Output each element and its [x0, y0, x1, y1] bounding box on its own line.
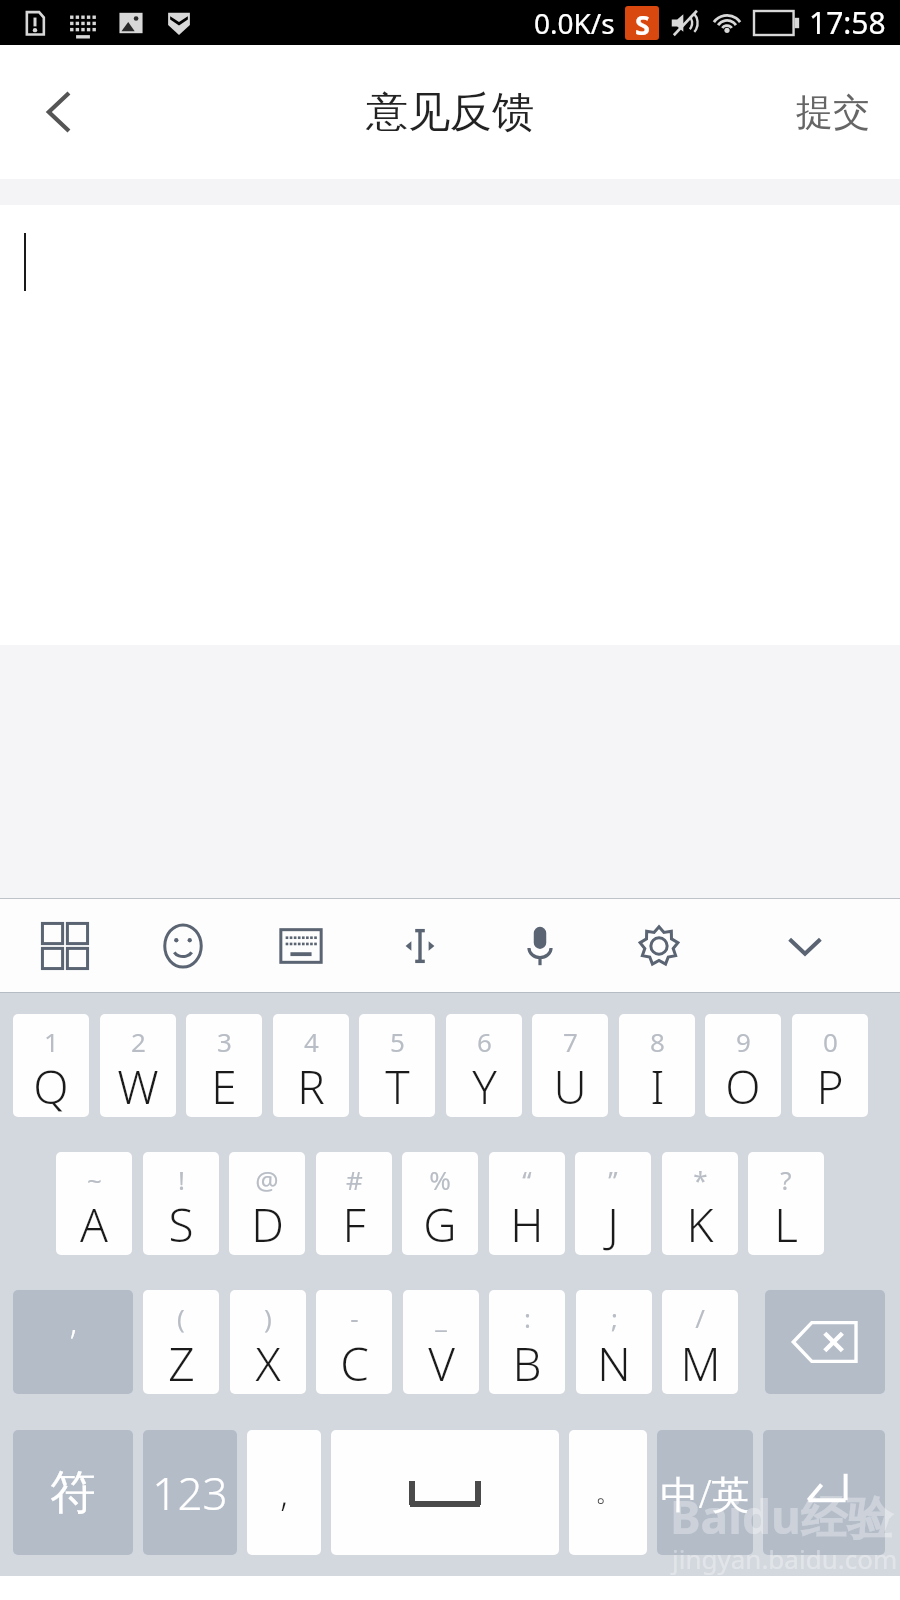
staticText: 符 [50, 1464, 96, 1522]
button[interactable]: 2 [100, 1014, 176, 1117]
staticText: B [512, 1332, 542, 1394]
button[interactable]: Voice input [507, 913, 573, 979]
staticText: @ [255, 1162, 279, 1197]
staticText: M [680, 1332, 721, 1394]
staticText: ) [264, 1300, 272, 1335]
button[interactable]: ) [230, 1290, 306, 1394]
staticText: 3 [217, 1024, 232, 1059]
button[interactable]: 。 [569, 1430, 647, 1555]
staticText: 意见反馈 [366, 86, 534, 139]
staticText: 5 [390, 1024, 405, 1059]
staticText: 123 [152, 1463, 228, 1523]
button[interactable]: ? [748, 1152, 824, 1255]
staticText: R [297, 1055, 325, 1117]
button[interactable]: 6 [446, 1014, 522, 1117]
staticText: W [117, 1055, 159, 1117]
staticText: , [280, 1470, 288, 1516]
staticText: S [635, 6, 650, 40]
staticText: ~ [87, 1162, 102, 1197]
staticText: V [428, 1332, 455, 1394]
staticText: D [251, 1193, 284, 1255]
button[interactable]: Keyboard layouts [32, 913, 98, 979]
staticText: F [342, 1193, 366, 1255]
button[interactable]: Hide keyboard [772, 913, 838, 979]
button[interactable]: # [316, 1152, 392, 1255]
button[interactable]: % [402, 1152, 478, 1255]
button[interactable]: Cursor control [387, 913, 453, 979]
button[interactable]: Space [331, 1430, 559, 1555]
staticText: # [346, 1162, 363, 1197]
staticText: O [725, 1055, 761, 1117]
staticText: 6 [477, 1024, 492, 1059]
staticText: “ [522, 1162, 532, 1197]
staticText: 提交 [796, 89, 870, 136]
button[interactable]: 1 [13, 1014, 89, 1117]
staticText: 0.0K/s [534, 4, 615, 42]
button[interactable]: ” [575, 1152, 651, 1255]
button[interactable] [0, 205, 900, 645]
staticText: E [211, 1055, 237, 1117]
button[interactable]: Back [0, 45, 120, 179]
button[interactable]: 7 [532, 1014, 608, 1117]
staticText: U [553, 1055, 587, 1117]
button[interactable]: , [247, 1430, 321, 1555]
staticText: 4 [304, 1024, 319, 1059]
staticText: G [423, 1193, 457, 1255]
staticText: % [429, 1162, 451, 1197]
button[interactable]: ! [143, 1152, 219, 1255]
button[interactable]: - [316, 1290, 392, 1394]
staticText: 。 [595, 1476, 621, 1509]
staticText: 9 [736, 1024, 751, 1059]
staticText: Q [33, 1055, 69, 1117]
button[interactable]: _ [403, 1290, 479, 1394]
staticText: / [695, 1300, 705, 1335]
button[interactable]: 3 [186, 1014, 262, 1117]
button[interactable]: * [662, 1152, 738, 1255]
button[interactable]: ~ [56, 1152, 132, 1255]
staticText: * [693, 1162, 708, 1197]
button[interactable]: 5 [359, 1014, 435, 1117]
staticText: L [774, 1193, 798, 1255]
button[interactable]: Emoji [150, 913, 216, 979]
staticText: Y [472, 1055, 497, 1117]
button[interactable]: Backspace [765, 1290, 885, 1394]
staticText: H [510, 1193, 544, 1255]
button[interactable]: 9 [705, 1014, 781, 1117]
button[interactable]: 4 [273, 1014, 349, 1117]
staticText: 7 [563, 1024, 578, 1059]
staticText: A [80, 1193, 108, 1255]
button[interactable]: 符 [13, 1430, 133, 1555]
button[interactable]: Keyboard [268, 913, 334, 979]
button[interactable]: ( [143, 1290, 219, 1394]
staticText: ? [780, 1162, 792, 1197]
staticText: 1 [44, 1024, 59, 1059]
staticText: S [168, 1193, 194, 1255]
button[interactable]: @ [229, 1152, 305, 1255]
button[interactable]: / [662, 1290, 738, 1394]
staticText: _ [435, 1300, 447, 1335]
staticText: P [816, 1055, 844, 1117]
button[interactable]: Enter [763, 1430, 885, 1555]
staticText: C [340, 1332, 369, 1394]
button[interactable]: : [489, 1290, 565, 1394]
button[interactable]: “ [489, 1152, 565, 1255]
button[interactable]: 0 [792, 1014, 868, 1117]
staticText: ’ [70, 1319, 76, 1365]
button[interactable]: ; [576, 1290, 652, 1394]
button[interactable]: 8 [619, 1014, 695, 1117]
staticText: - [350, 1300, 359, 1335]
staticText: Baidu经验 [670, 1485, 893, 1548]
staticText: J [607, 1193, 619, 1255]
button[interactable]: Settings [626, 913, 692, 979]
staticText: ” [608, 1162, 618, 1197]
staticText: ( [177, 1300, 185, 1335]
staticText: ; [611, 1300, 618, 1335]
staticText: : [524, 1300, 531, 1335]
button[interactable]: 123 [143, 1430, 237, 1555]
button[interactable]: 提交 [796, 45, 870, 179]
button[interactable]: 中/英 [657, 1430, 753, 1555]
staticText: jingyan.baidu.com [672, 1541, 898, 1576]
staticText: 2 [131, 1024, 146, 1059]
staticText: 中/英 [660, 1467, 750, 1519]
